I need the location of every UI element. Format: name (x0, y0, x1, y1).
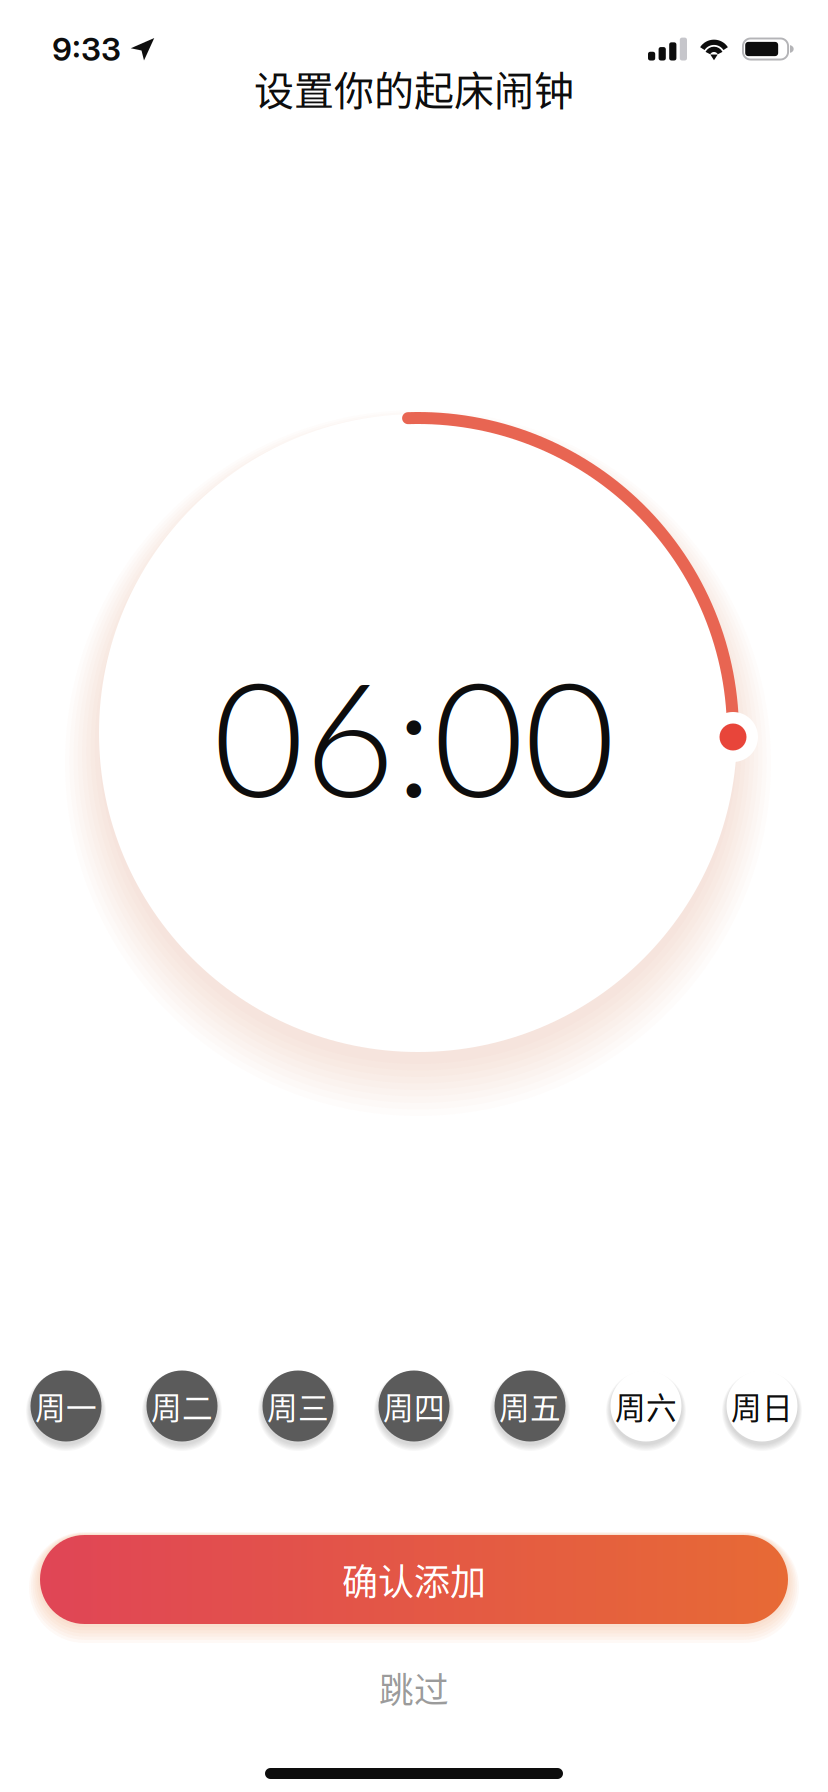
staticText: 周四 (383, 1384, 445, 1428)
staticText: 周日 (731, 1384, 793, 1428)
staticText: 周五 (499, 1384, 561, 1428)
button[interactable]: 确认添加 (0, 1535, 828, 1624)
staticText: 周二 (151, 1384, 213, 1428)
staticText: 确认添加 (342, 1553, 486, 1605)
button[interactable]: 周四 (374, 1365, 454, 1447)
staticText: 周一 (35, 1384, 97, 1428)
button[interactable]: 周五 (490, 1365, 570, 1447)
button[interactable]: 周一 (26, 1365, 106, 1447)
button[interactable]: 周六 (606, 1365, 686, 1447)
staticText: 跳过 (379, 1663, 449, 1713)
staticText: 周六 (615, 1384, 677, 1428)
staticText: 06:00 (213, 642, 615, 830)
staticText: 设置你的起床闹钟 (254, 59, 574, 117)
button[interactable]: 周二 (142, 1365, 222, 1447)
button[interactable]: 周日 (722, 1365, 802, 1447)
button[interactable]: 周三 (258, 1365, 338, 1447)
staticText: 周三 (267, 1384, 329, 1428)
button[interactable]: 跳过 (0, 1656, 828, 1720)
staticText: 9:33 (52, 30, 121, 68)
